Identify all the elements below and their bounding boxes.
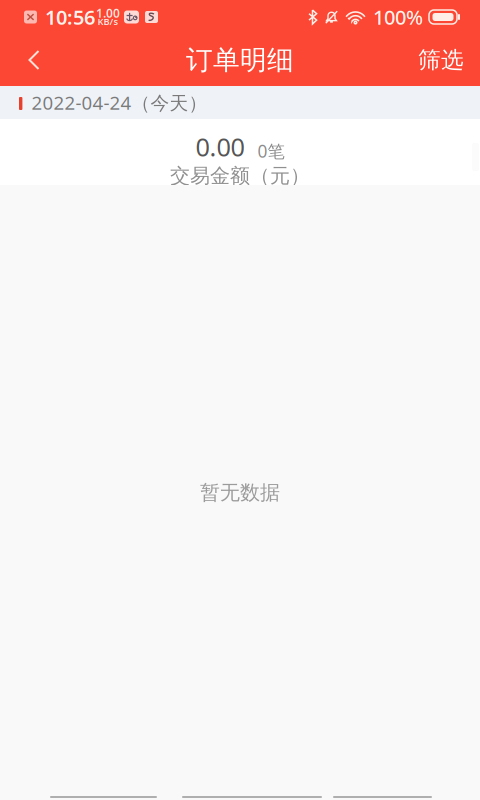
staticText: 暂无数据 <box>200 480 280 505</box>
staticText: 2022-04-24（今天） <box>31 90 207 115</box>
staticText: 筛选 <box>418 46 464 74</box>
staticText: 1.00 <box>96 5 120 21</box>
staticText: 100% <box>373 4 423 30</box>
button[interactable]: 筛选 <box>404 34 480 86</box>
button[interactable]: Back <box>0 34 57 86</box>
button[interactable]: 0.00 <box>0 119 480 185</box>
staticText: 0笔 <box>257 139 284 162</box>
staticText: KB/s <box>97 15 118 28</box>
staticText: 交易金额（元） <box>170 163 310 188</box>
staticText: 10:56 <box>45 4 95 30</box>
staticText: 0.00 <box>195 130 244 163</box>
staticText: 订单明细 <box>186 44 294 76</box>
